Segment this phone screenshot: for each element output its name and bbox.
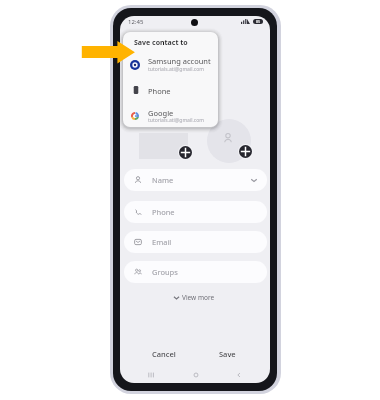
- staticText: Google: [148, 108, 174, 118]
- button[interactable]: Email: [124, 231, 267, 253]
- button[interactable]: View more: [170, 290, 218, 304]
- staticText: 85: [256, 19, 261, 24]
- button[interactable]: Back: [232, 368, 246, 382]
- staticText: Email: [152, 237, 172, 247]
- button[interactable]: Cover image: [139, 133, 188, 159]
- button[interactable]: Save: [210, 345, 244, 363]
- staticText: Groups: [152, 267, 178, 277]
- staticText: Samsung account: [148, 56, 211, 66]
- staticText: Save contact to: [134, 38, 188, 48]
- button[interactable]: Phone: [123, 82, 218, 104]
- button[interactable]: Name: [124, 169, 267, 191]
- button[interactable]: Cancel: [144, 345, 184, 363]
- staticText: View more: [182, 293, 215, 302]
- staticText: Phone: [152, 207, 175, 217]
- button[interactable]: Home: [189, 368, 203, 382]
- button[interactable]: Add cover image: [179, 146, 192, 159]
- button[interactable]: Groups: [124, 261, 267, 283]
- staticText: tutorials.ati@gmail.com: [148, 117, 204, 124]
- button[interactable]: Recents: [144, 368, 158, 382]
- button[interactable]: Google: [123, 105, 218, 127]
- button[interactable]: Add photo: [239, 145, 252, 158]
- staticText: Save: [219, 349, 236, 359]
- staticText: 12:45: [128, 18, 144, 26]
- staticText: Phone: [148, 86, 171, 96]
- button[interactable]: Phone: [124, 201, 267, 223]
- button[interactable]: Samsung account: [123, 54, 218, 80]
- staticText: tutorials.ati@gmail.com: [148, 66, 204, 73]
- staticText: Cancel: [152, 349, 176, 359]
- button[interactable]: Contact photo: [207, 119, 251, 163]
- staticText: Name: [152, 175, 174, 185]
